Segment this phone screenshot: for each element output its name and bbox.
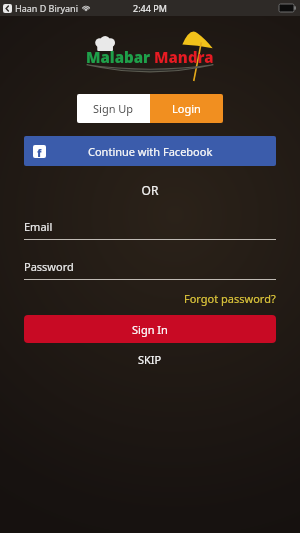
staticText: Sign In <box>132 322 168 337</box>
staticText: Email <box>24 219 53 234</box>
staticText: Continue with Facebook <box>88 144 213 159</box>
staticText: OR <box>0 182 300 198</box>
staticText: Haan D Biryani <box>15 2 78 14</box>
staticText: Login <box>172 101 201 116</box>
staticText: f <box>37 145 42 158</box>
button[interactable]: Email <box>24 219 276 240</box>
button[interactable]: f <box>24 136 276 166</box>
button[interactable]: Back <box>3 4 12 13</box>
staticText: 2:44 PM <box>133 2 167 14</box>
button[interactable]: Password <box>24 259 276 280</box>
button[interactable]: Sign Up <box>77 94 150 123</box>
button[interactable]: Forgot password? <box>184 289 276 308</box>
staticText: Malabar <box>86 47 151 67</box>
staticText: Password <box>24 259 74 274</box>
staticText: Mandra <box>154 47 214 67</box>
staticText: Sign Up <box>93 101 134 116</box>
button[interactable]: Sign In <box>24 315 276 343</box>
button[interactable]: Login <box>150 94 223 123</box>
button[interactable]: SKIP <box>124 349 176 370</box>
